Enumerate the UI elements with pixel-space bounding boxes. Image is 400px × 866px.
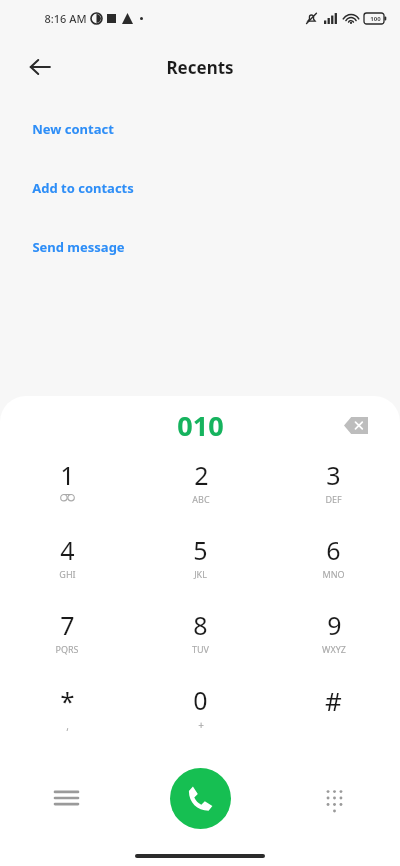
button[interactable]: 5 [134,533,267,592]
staticText: 100 [370,15,381,23]
staticText: + [198,718,204,732]
staticText: * [60,683,75,718]
button[interactable]: Backspace [338,407,374,443]
button[interactable]: 4 [0,533,134,592]
staticText: Recents [166,56,234,79]
staticText: 9 [327,608,342,642]
staticText: 5 [193,533,208,567]
button[interactable]: 6 [267,533,400,592]
button[interactable]: 2 [134,458,267,517]
button[interactable]: Back [20,47,60,87]
button[interactable]: # [267,683,400,742]
staticText: 4 [60,533,75,567]
button[interactable]: Add to contacts [31,177,135,199]
staticText: 0 [193,683,208,717]
staticText: DEF [325,493,342,505]
button[interactable]: 9 [267,608,400,667]
staticText: JKL [194,568,207,580]
button[interactable]: 1 [0,458,134,517]
staticText: # [325,683,342,718]
button[interactable]: 7 [0,608,134,667]
staticText: , [66,719,69,733]
staticText: 6 [326,533,341,567]
staticText: 2 [194,458,209,492]
button[interactable]: * [0,683,134,742]
button[interactable]: Menu [44,776,88,820]
staticText: 8:16 AM [44,11,87,26]
staticText: 3 [326,458,341,492]
button[interactable]: 3 [267,458,400,517]
button[interactable]: 8 [134,608,267,667]
staticText: TUV [192,643,209,655]
button[interactable]: 0 [134,683,267,742]
staticText: 010 [177,407,224,444]
staticText: ABC [192,493,210,505]
button[interactable]: New contact [31,118,115,140]
staticText: Send message [32,238,125,256]
button[interactable]: Dialpad [312,776,356,820]
staticText: MNO [322,568,345,580]
staticText: Add to contacts [32,179,134,197]
button[interactable]: Send message [31,236,126,258]
staticText: GHI [59,568,76,580]
staticText: WXYZ [322,643,346,655]
staticText: New contact [32,120,114,138]
staticText: PQRS [55,643,79,655]
staticText: 8 [193,608,208,642]
button[interactable]: Call [170,768,231,829]
staticText: 7 [60,608,75,642]
staticText: 1 [60,458,75,492]
